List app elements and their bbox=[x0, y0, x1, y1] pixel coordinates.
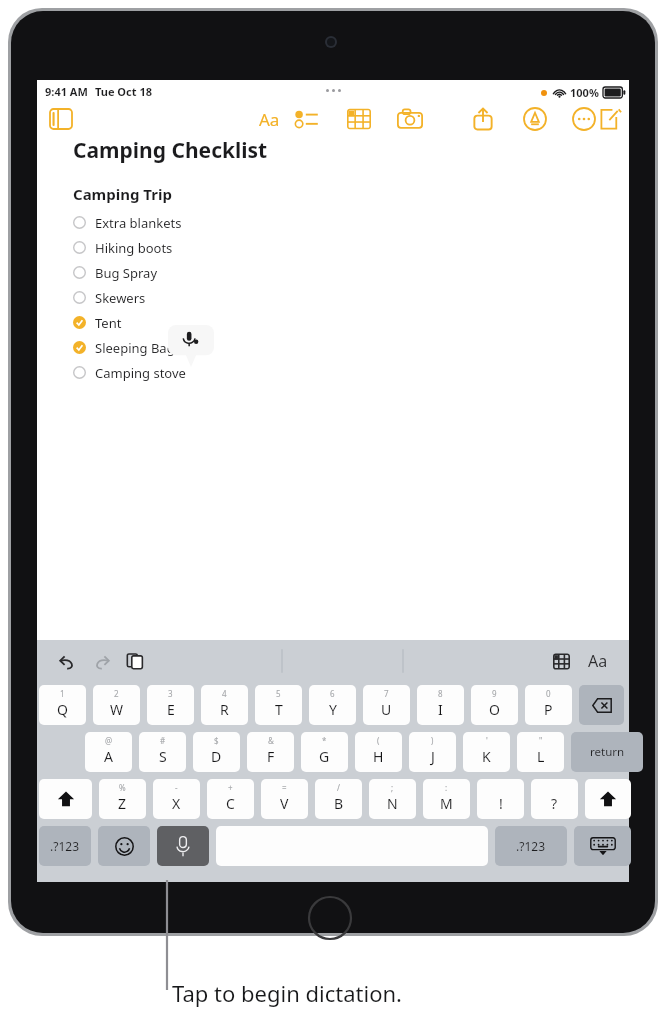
button[interactable]: New note bbox=[599, 107, 623, 131]
button[interactable]: ( bbox=[355, 732, 402, 772]
staticText: D bbox=[211, 747, 222, 766]
staticText: N bbox=[387, 794, 398, 813]
button[interactable]: Dictation bbox=[157, 826, 209, 866]
button[interactable]: Aa bbox=[583, 647, 613, 675]
button[interactable]: Show sidebar bbox=[49, 108, 73, 130]
button[interactable]: Shift bbox=[39, 779, 92, 819]
button[interactable]: $ bbox=[193, 732, 240, 772]
button[interactable]: 0 bbox=[525, 685, 572, 725]
button[interactable]: 4 bbox=[201, 685, 248, 725]
button[interactable]: Insert media bbox=[397, 108, 423, 130]
staticText: Z bbox=[118, 794, 127, 813]
button[interactable]: : bbox=[423, 779, 470, 819]
button[interactable]: 8 bbox=[417, 685, 464, 725]
staticText: ' bbox=[486, 735, 488, 746]
staticText: R bbox=[220, 700, 229, 719]
staticText: Camping stove bbox=[95, 364, 186, 382]
button[interactable]: return bbox=[571, 732, 643, 772]
button[interactable]: .?123 bbox=[495, 826, 567, 866]
button[interactable]: Checklist bbox=[295, 108, 319, 130]
staticText: ; bbox=[391, 782, 394, 793]
button[interactable]: Bug Spray bbox=[73, 260, 323, 285]
staticText: M bbox=[440, 794, 453, 813]
button[interactable]: .?123 bbox=[39, 826, 91, 866]
button[interactable]: 6 bbox=[309, 685, 356, 725]
button[interactable]: ? bbox=[531, 779, 578, 819]
button[interactable]: 1 bbox=[39, 685, 86, 725]
staticText: F bbox=[267, 747, 275, 766]
staticText: E bbox=[167, 700, 175, 719]
button[interactable]: Extra blankets bbox=[73, 210, 323, 235]
button[interactable]: ; bbox=[369, 779, 416, 819]
staticText: 6 bbox=[330, 688, 335, 699]
button[interactable]: Hiking boots bbox=[73, 235, 323, 260]
button[interactable]: 2 bbox=[93, 685, 140, 725]
button[interactable]: Share bbox=[471, 107, 495, 131]
staticText: Camping Trip bbox=[73, 184, 172, 204]
staticText: Sleeping Bags bbox=[95, 339, 181, 357]
button[interactable]: Insert table bbox=[547, 647, 575, 675]
button[interactable]: @ bbox=[85, 732, 132, 772]
button[interactable]: ' bbox=[463, 732, 510, 772]
button[interactable]: * bbox=[301, 732, 348, 772]
button[interactable]: = bbox=[261, 779, 308, 819]
button[interactable]: 5 bbox=[255, 685, 302, 725]
button[interactable]: Redo bbox=[87, 647, 115, 675]
button[interactable]: / bbox=[315, 779, 362, 819]
button[interactable]: Paste bbox=[121, 647, 149, 675]
button[interactable]: Markup bbox=[523, 107, 547, 131]
button[interactable]: + bbox=[207, 779, 254, 819]
button[interactable]: - bbox=[153, 779, 200, 819]
button[interactable]: Hide keyboard bbox=[574, 826, 631, 866]
button[interactable]: Camping stove bbox=[73, 360, 323, 385]
button[interactable]: 9 bbox=[471, 685, 518, 725]
staticText: return bbox=[590, 744, 625, 760]
button[interactable]: More bbox=[572, 107, 596, 131]
staticText: 2 bbox=[114, 688, 119, 699]
button[interactable]: ) bbox=[409, 732, 456, 772]
button[interactable]: Table bbox=[347, 108, 371, 130]
staticText: C bbox=[226, 794, 235, 813]
staticText: = bbox=[282, 782, 287, 793]
staticText: .?123 bbox=[516, 838, 546, 854]
staticText: * bbox=[322, 735, 327, 746]
staticText: A bbox=[104, 747, 113, 766]
staticText: X bbox=[172, 794, 181, 813]
staticText: .?123 bbox=[50, 838, 80, 854]
staticText: Skewers bbox=[95, 289, 146, 307]
button[interactable]: Skewers bbox=[73, 285, 323, 310]
button[interactable]: 7 bbox=[363, 685, 410, 725]
button[interactable]: Emoji bbox=[98, 826, 150, 866]
button[interactable]: Delete bbox=[579, 685, 624, 725]
staticText: 4 bbox=[222, 688, 227, 699]
button[interactable]: 3 bbox=[147, 685, 194, 725]
staticText: ? bbox=[551, 794, 558, 813]
staticText: Aa bbox=[259, 108, 280, 131]
staticText: 9 bbox=[492, 688, 497, 699]
button[interactable]: % bbox=[99, 779, 146, 819]
staticText: P bbox=[544, 700, 553, 719]
button[interactable]: ! bbox=[477, 779, 524, 819]
button[interactable]: Aa bbox=[254, 106, 284, 132]
staticText: I bbox=[438, 700, 443, 719]
button[interactable]: & bbox=[247, 732, 294, 772]
button[interactable]: # bbox=[139, 732, 186, 772]
button[interactable]: Sleeping Bags bbox=[73, 335, 323, 360]
button[interactable]: Shift bbox=[585, 779, 631, 819]
staticText: $ bbox=[214, 735, 219, 746]
button[interactable]: Undo bbox=[53, 647, 81, 675]
staticText: J bbox=[431, 747, 435, 766]
staticText: O bbox=[489, 700, 500, 719]
staticText: @ bbox=[105, 735, 113, 746]
button[interactable]: " bbox=[517, 732, 564, 772]
staticText: 100% bbox=[570, 85, 599, 100]
button[interactable]: Tent bbox=[73, 310, 323, 335]
staticText: 0 bbox=[546, 688, 551, 699]
staticText: W bbox=[110, 700, 124, 719]
staticText: V bbox=[280, 794, 289, 813]
staticText: / bbox=[337, 782, 340, 793]
